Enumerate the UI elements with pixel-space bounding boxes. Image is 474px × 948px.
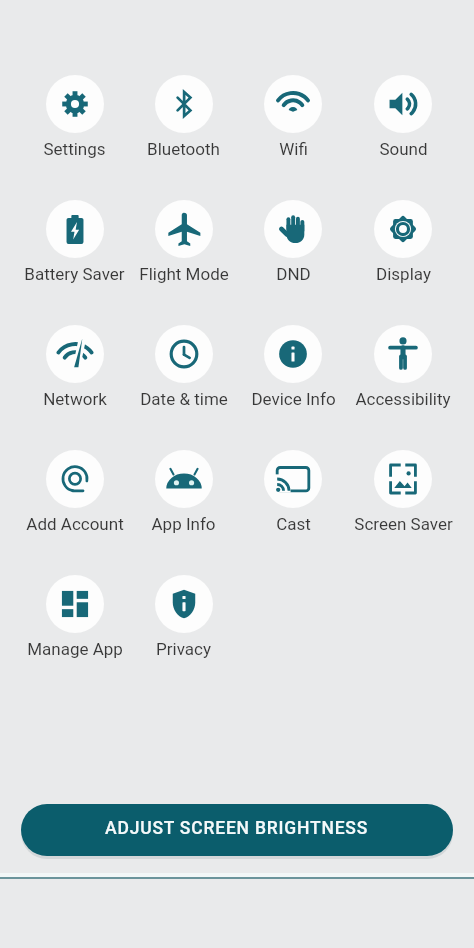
staticText: Cast: [276, 514, 311, 534]
button[interactable]: Date & time: [129, 325, 238, 450]
staticText: Device Info: [251, 389, 336, 409]
staticText: Date & time: [140, 389, 228, 409]
staticText: Bluetooth: [147, 139, 220, 159]
button[interactable]: Privacy: [129, 575, 238, 700]
button[interactable]: Display: [348, 200, 458, 325]
button[interactable]: Network: [20, 325, 129, 450]
staticText: Add Account: [26, 514, 124, 534]
staticText: Accessibility: [355, 389, 451, 409]
staticText: Network: [43, 389, 107, 409]
staticText: Sound: [379, 139, 428, 159]
button[interactable]: DND: [238, 200, 348, 325]
staticText: App Info: [151, 514, 216, 534]
button[interactable]: Add Account: [20, 450, 129, 575]
button[interactable]: Battery Saver: [20, 200, 129, 325]
button[interactable]: Cast: [238, 450, 348, 575]
button[interactable]: Screen Saver: [348, 450, 458, 575]
button[interactable]: Device Info: [238, 325, 348, 450]
button[interactable]: Accessibility: [348, 325, 458, 450]
staticText: Display: [376, 264, 431, 284]
button[interactable]: Wifi: [238, 75, 348, 200]
staticText: Flight Mode: [139, 264, 229, 284]
button[interactable]: Settings: [20, 75, 129, 200]
staticText: Wifi: [279, 139, 308, 159]
staticText: Settings: [43, 139, 106, 159]
staticText: Screen Saver: [354, 514, 453, 534]
staticText: Privacy: [156, 639, 211, 659]
button[interactable]: Flight Mode: [129, 200, 238, 325]
button[interactable]: Bluetooth: [129, 75, 238, 200]
button[interactable]: ADJUST SCREEN BRIGHTNESS: [21, 804, 453, 856]
button[interactable]: App Info: [129, 450, 238, 575]
button[interactable]: Manage App: [20, 575, 129, 700]
staticText: Manage App: [27, 639, 123, 659]
button[interactable]: Sound: [348, 75, 458, 200]
staticText: DND: [276, 264, 311, 284]
staticText: ADJUST SCREEN BRIGHTNESS: [105, 818, 369, 839]
staticText: Battery Saver: [24, 264, 125, 284]
